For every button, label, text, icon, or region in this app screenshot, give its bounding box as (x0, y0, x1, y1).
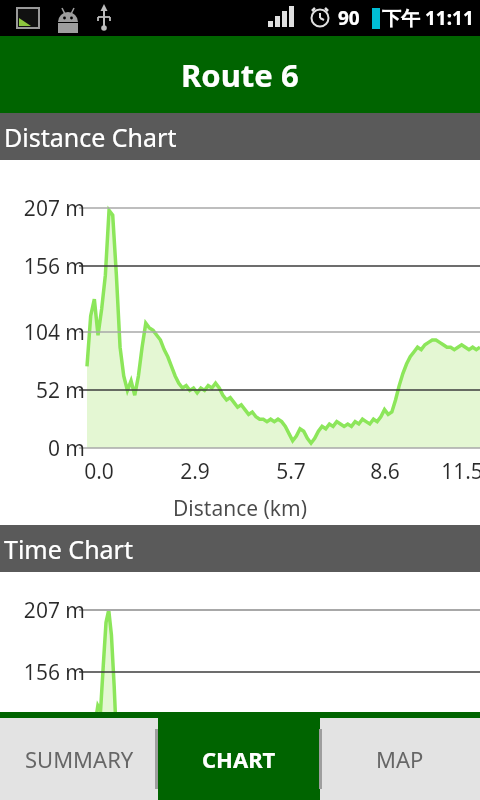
staticText: 104 m (0, 318, 85, 347)
staticText: 0.0 (64, 457, 134, 486)
button[interactable]: CHART (158, 718, 320, 800)
staticText: Distance Chart (4, 120, 177, 154)
staticText: CHART (202, 744, 276, 774)
staticText: 90 (338, 5, 360, 31)
staticText: 5.7 (256, 457, 326, 486)
staticText: 0 m (0, 434, 85, 463)
staticText: Route 6 (181, 54, 299, 96)
button[interactable]: MAP (320, 718, 480, 800)
staticText: 2.9 (160, 457, 230, 486)
staticText: 156 m (0, 658, 85, 687)
staticText: 11.5 (427, 457, 480, 486)
staticText: 52 m (0, 376, 85, 405)
staticText: 下午 11:11 (382, 5, 474, 31)
staticText: SUMMARY (25, 744, 134, 774)
staticText: Time Chart (4, 532, 133, 566)
button[interactable]: Distance Chart (0, 113, 480, 160)
staticText: MAP (376, 744, 424, 774)
staticText: 207 m (0, 194, 85, 223)
staticText: 8.6 (350, 457, 420, 486)
button[interactable]: SUMMARY (0, 718, 158, 800)
staticText: Distance (km) (0, 494, 480, 523)
button[interactable]: Time Chart (0, 525, 480, 572)
staticText: 207 m (0, 596, 85, 625)
staticText: 156 m (0, 252, 85, 281)
